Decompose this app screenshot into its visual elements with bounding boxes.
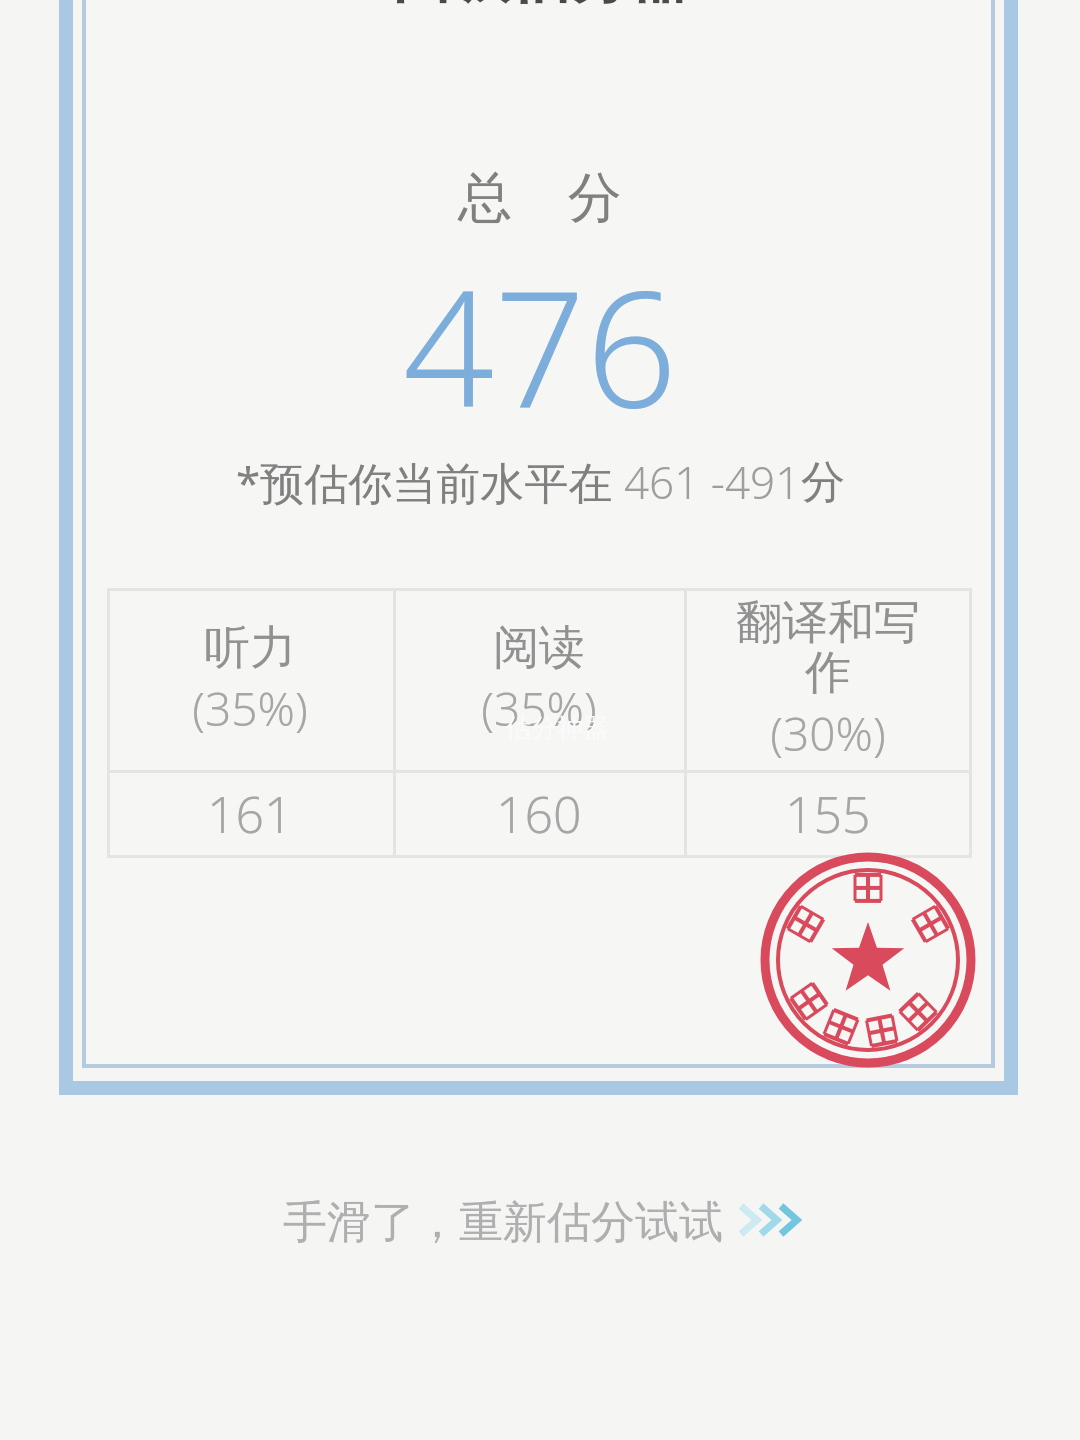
staticText: 四级估分器	[0, 0, 1080, 14]
staticText: 分	[801, 455, 845, 510]
staticText: (35%)	[481, 677, 597, 740]
button[interactable]: 手滑了，重新估分试试	[0, 1190, 1080, 1250]
staticText: 155	[785, 780, 871, 848]
staticText: 手滑了，重新估分试试	[283, 1190, 735, 1250]
staticText: 听力	[204, 619, 296, 677]
staticText: (30%)	[770, 702, 886, 765]
button[interactable]: 155	[684, 770, 972, 858]
button[interactable]: 翻译和写 作	[684, 588, 972, 770]
button[interactable]: 听力	[107, 588, 393, 770]
staticText: 461 -491	[624, 452, 801, 512]
staticText: (35%)	[192, 677, 308, 740]
staticText: 估分神器	[505, 712, 609, 745]
staticText: 总 分	[0, 158, 1080, 232]
staticText: 160	[496, 780, 582, 848]
staticText: *预估你当前水平在	[236, 452, 624, 512]
staticText: 翻译和写 作	[736, 594, 920, 702]
button[interactable]: 160	[393, 770, 684, 858]
staticText: 161	[207, 780, 293, 848]
button[interactable]: 161	[107, 770, 393, 858]
staticText: 476	[0, 236, 1080, 454]
staticText: 阅读	[493, 619, 585, 677]
button[interactable]: 阅读	[393, 588, 684, 770]
